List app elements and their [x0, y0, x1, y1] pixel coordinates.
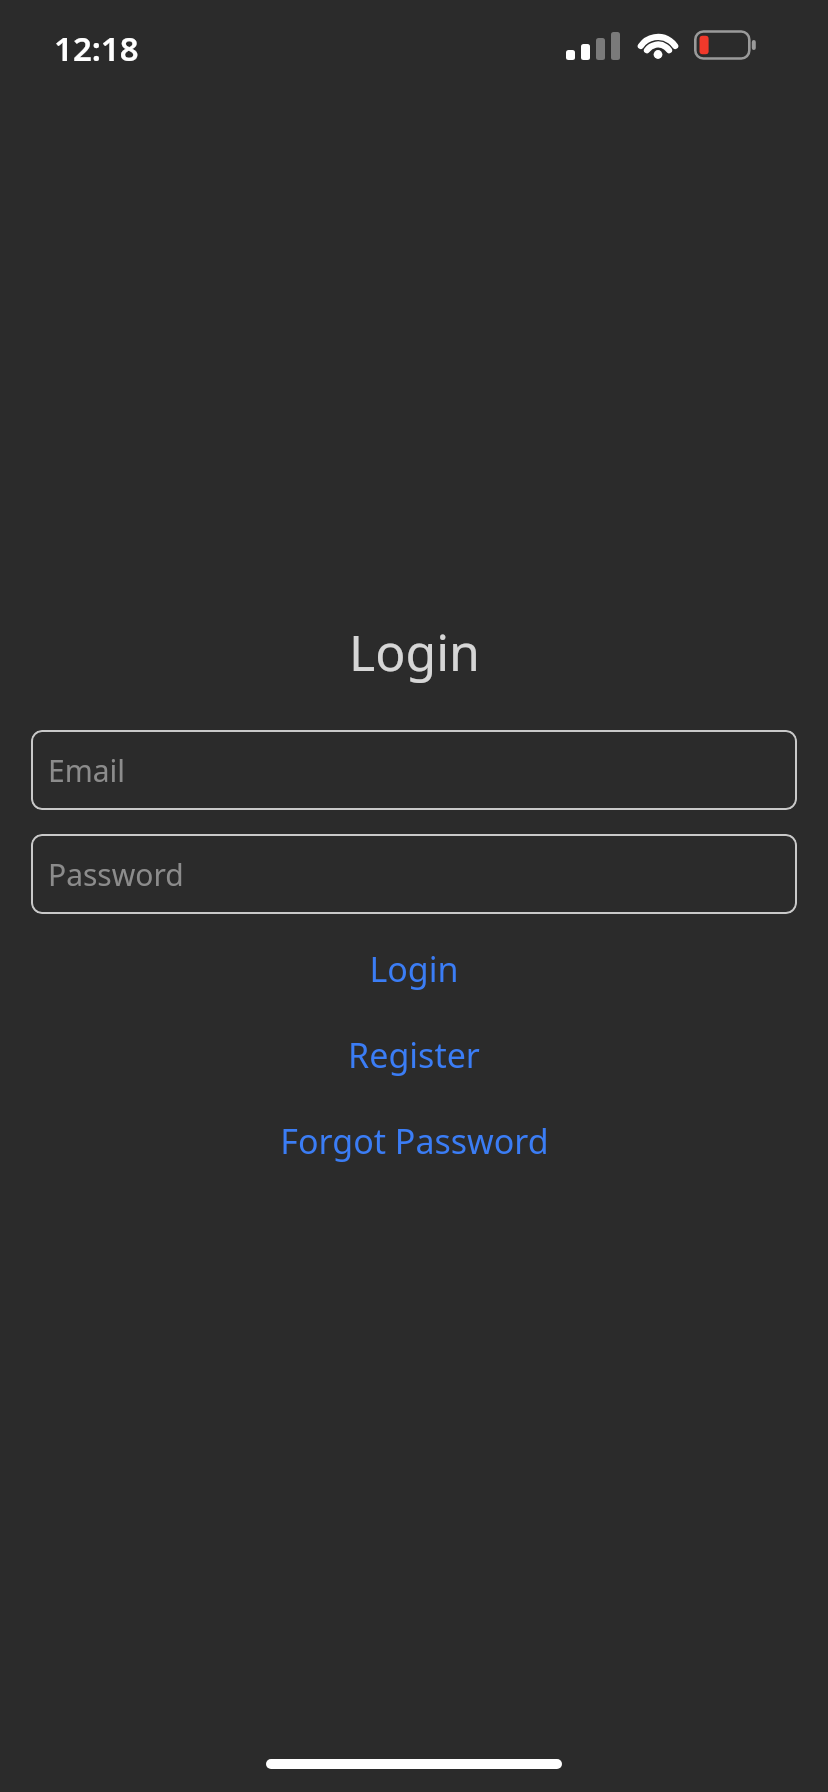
staticText: 12:18: [54, 26, 139, 71]
staticText: Password: [48, 854, 184, 895]
staticText: Register: [348, 1032, 480, 1078]
staticText: Login: [349, 618, 480, 686]
button[interactable]: Forgot Password: [0, 1114, 828, 1168]
staticText: Forgot Password: [280, 1118, 549, 1164]
button[interactable]: Password: [31, 834, 797, 914]
staticText: Login: [369, 946, 459, 992]
button[interactable]: Email: [31, 730, 797, 810]
button[interactable]: Login: [0, 942, 828, 996]
staticText: Email: [48, 750, 126, 791]
button[interactable]: Register: [0, 1028, 828, 1082]
